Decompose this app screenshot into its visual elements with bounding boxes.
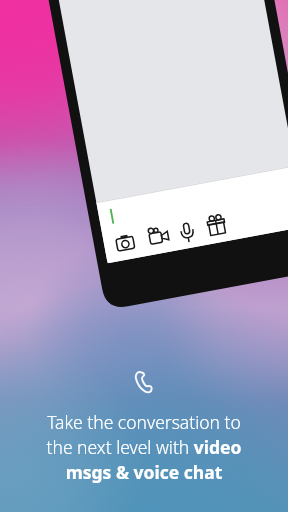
other: Voice chat — [128, 366, 160, 398]
button[interactable]: Voice chat — [0, 366, 288, 484]
staticText: Take the conversation to the next level … — [10, 410, 278, 484]
